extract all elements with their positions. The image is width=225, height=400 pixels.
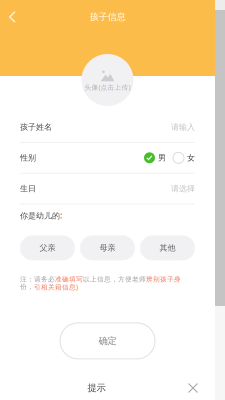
staticText: 其他 <box>159 243 175 253</box>
staticText: 份， <box>20 283 34 291</box>
staticText: 性别 <box>20 153 36 163</box>
staticText: 确定 <box>98 335 116 347</box>
button[interactable]: 性别 <box>0 143 215 174</box>
staticText: 你是幼儿的: <box>20 210 62 221</box>
staticText: 父亲 <box>39 243 55 253</box>
button[interactable]: 女 <box>173 152 195 163</box>
staticText: 准确填写 <box>55 275 83 283</box>
staticText: 请选择 <box>171 184 195 193</box>
button[interactable]: 确定 <box>60 323 155 359</box>
staticText: 辨别孩子身 <box>146 275 181 283</box>
staticText: 孩子信息 <box>89 11 125 23</box>
staticText: 头像(点击上传) <box>84 83 130 92</box>
staticText: 引相关籍信息) <box>34 282 78 291</box>
staticText: 男 <box>158 153 166 163</box>
button[interactable]: 父亲 <box>20 235 75 260</box>
button[interactable]: 孩子姓名 <box>0 112 215 143</box>
staticText: 孩子姓名 <box>20 122 52 132</box>
button[interactable]: 生日 <box>0 174 215 204</box>
staticText: 以上信息，方便老师 <box>83 275 146 283</box>
staticText: 女 <box>187 153 195 163</box>
staticText: 请输入 <box>171 122 195 132</box>
button[interactable]: 其他 <box>140 235 195 260</box>
staticText: 提示 <box>87 382 105 394</box>
button[interactable]: 男 <box>144 152 166 163</box>
button[interactable]: 母亲 <box>80 235 135 260</box>
button[interactable]: 上传头像 <box>81 54 133 106</box>
button[interactable]: 关闭 <box>182 377 204 399</box>
staticText: 母亲 <box>99 243 115 253</box>
staticText: 生日 <box>20 184 36 193</box>
staticText: 注：请务必 <box>20 275 55 283</box>
button[interactable]: 返回 <box>8 6 30 28</box>
